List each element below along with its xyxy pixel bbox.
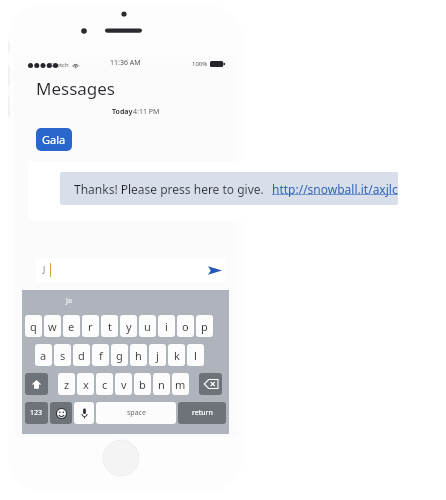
- staticText: p: [201, 319, 208, 334]
- staticText: Gala: [42, 132, 66, 147]
- staticText: t: [108, 319, 112, 334]
- staticText: 123: [30, 408, 43, 418]
- staticText: z: [64, 377, 70, 392]
- staticText: h: [135, 348, 142, 363]
- button[interactable]: Backspace: [199, 373, 222, 395]
- button[interactable]: k: [168, 344, 185, 366]
- button[interactable]: Shift: [25, 373, 48, 395]
- button[interactable]: t: [101, 315, 118, 337]
- button[interactable]: w: [44, 315, 61, 337]
- button[interactable]: r: [82, 315, 99, 337]
- staticText: j: [156, 348, 159, 363]
- staticText: x: [83, 377, 89, 392]
- staticText: y: [126, 319, 132, 334]
- staticText: Sketch: [50, 61, 69, 69]
- button[interactable]: u: [139, 315, 156, 337]
- button[interactable]: n: [153, 373, 170, 395]
- button[interactable]: a: [35, 344, 52, 366]
- staticText: r: [88, 319, 93, 334]
- staticText: s: [60, 348, 66, 363]
- staticText: l: [194, 348, 197, 363]
- staticText: u: [144, 319, 151, 334]
- staticText: Thanks! Please press here to give.: [74, 181, 264, 197]
- staticText: g: [116, 348, 123, 363]
- button[interactable]: s: [54, 344, 71, 366]
- button[interactable]: b: [134, 373, 151, 395]
- staticText: v: [121, 377, 127, 392]
- button[interactable]: l: [187, 344, 204, 366]
- staticText: b: [139, 377, 146, 392]
- button[interactable]: x: [77, 373, 94, 395]
- staticText: space: [127, 408, 146, 418]
- staticText: i: [165, 319, 168, 334]
- button[interactable]: Gala: [36, 128, 72, 151]
- staticText: w: [48, 319, 57, 334]
- button[interactable]: m: [172, 373, 189, 395]
- staticText: 11:36 AM: [110, 58, 141, 68]
- staticText: Messages: [36, 77, 116, 100]
- staticText: Ja: [66, 296, 72, 306]
- staticText: return: [192, 408, 213, 418]
- staticText: f: [99, 348, 103, 363]
- staticText: c: [102, 377, 108, 392]
- staticText: o: [182, 319, 189, 334]
- button[interactable]: v: [115, 373, 132, 395]
- staticText: 4:11 PM: [133, 107, 160, 117]
- button[interactable]: o: [177, 315, 194, 337]
- button[interactable]: y: [120, 315, 137, 337]
- staticText: d: [78, 348, 85, 363]
- button[interactable]: return: [178, 402, 226, 424]
- staticText: 100%: [192, 60, 208, 68]
- staticText: m: [175, 377, 186, 392]
- button[interactable]: http://snowball.it/axjlc: [272, 181, 398, 197]
- button[interactable]: h: [130, 344, 147, 366]
- button[interactable]: j: [149, 344, 166, 366]
- button[interactable]: c: [96, 373, 113, 395]
- button[interactable]: f: [92, 344, 109, 366]
- staticText: J: [43, 264, 46, 275]
- button[interactable]: 123: [25, 402, 48, 424]
- button[interactable]: p: [196, 315, 213, 337]
- button[interactable]: i: [158, 315, 175, 337]
- staticText: k: [174, 348, 180, 363]
- button[interactable]: Send: [204, 258, 226, 282]
- staticText: n: [158, 377, 165, 392]
- button[interactable]: Thanks! Please press here to give.: [60, 172, 398, 205]
- button[interactable]: e: [63, 315, 80, 337]
- button[interactable]: space: [96, 402, 176, 424]
- button[interactable]: Emoji: [50, 402, 72, 424]
- button[interactable]: q: [25, 315, 42, 337]
- staticText: q: [30, 319, 37, 334]
- staticText: a: [40, 348, 47, 363]
- button[interactable]: J: [36, 258, 226, 282]
- button[interactable]: g: [111, 344, 128, 366]
- button[interactable]: Dictate: [74, 402, 94, 424]
- button[interactable]: z: [58, 373, 75, 395]
- button[interactable]: d: [73, 344, 90, 366]
- staticText: Today: [112, 107, 133, 117]
- staticText: e: [68, 319, 75, 334]
